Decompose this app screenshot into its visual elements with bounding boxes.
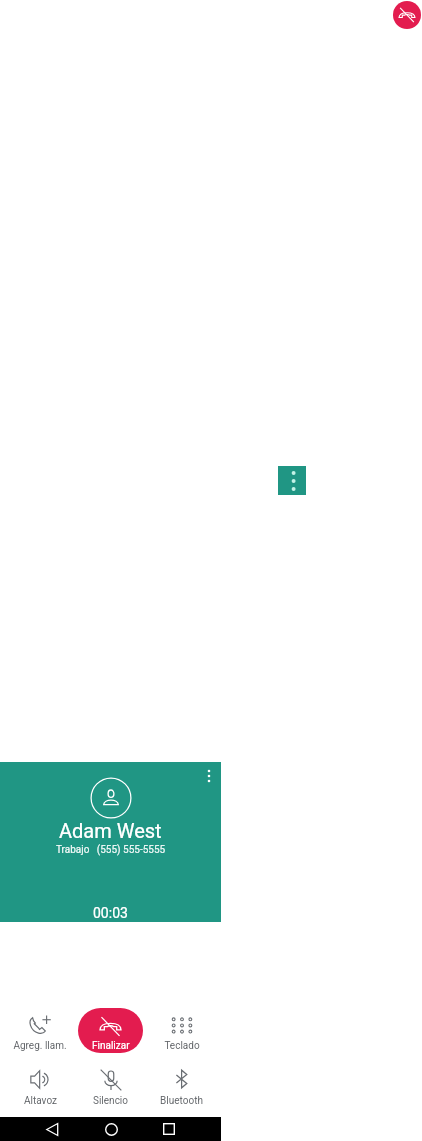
button[interactable]: More options <box>200 767 218 785</box>
staticText: Teclado <box>164 1040 200 1052</box>
button[interactable]: Altavoz <box>5 1069 75 1107</box>
button[interactable]: Recents <box>157 1117 181 1141</box>
button[interactable]: Adam West <box>0 762 221 922</box>
staticText: Altavoz <box>24 1095 57 1107</box>
button[interactable]: Home <box>99 1117 123 1141</box>
staticText: Finalizar <box>92 1040 130 1052</box>
button[interactable]: Bluetooth <box>146 1069 217 1107</box>
button[interactable]: Finalizar <box>78 1008 143 1053</box>
staticText: Adam West <box>59 819 162 842</box>
staticText: 00:03 <box>93 905 128 921</box>
button[interactable]: Back <box>40 1117 64 1141</box>
staticText: Silencio <box>93 1095 128 1107</box>
button[interactable]: Teclado <box>146 1014 217 1052</box>
button[interactable]: Overflow menu <box>278 466 306 495</box>
staticText: Trabajo (555) 555-5555 <box>56 844 166 856</box>
button[interactable]: Silencio <box>75 1069 146 1107</box>
staticText: Bluetooth <box>160 1095 203 1107</box>
button[interactable]: Agreg. llam. <box>5 1014 75 1052</box>
button[interactable]: End call <box>393 1 421 29</box>
staticText: Agreg. llam. <box>13 1040 67 1052</box>
